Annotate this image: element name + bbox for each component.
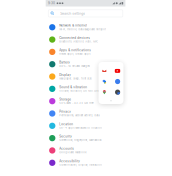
staticText: Sound & vibration — [59, 85, 87, 89]
button[interactable]: Security — [46, 132, 125, 144]
button[interactable]: Search settings — [48, 10, 123, 17]
staticText: Privacy — [59, 110, 71, 113]
staticText: 50% used - 62.23 GB free — [59, 102, 93, 105]
button[interactable]: Location — [46, 120, 125, 132]
button[interactable]: Storage — [46, 95, 125, 107]
staticText: Apps & notifications — [59, 48, 91, 52]
button[interactable]: Connected devices — [46, 33, 125, 46]
staticText: Connected devices — [59, 36, 90, 40]
staticText: Screen lock, fingerprint, Face unlock — [59, 139, 101, 142]
staticText: Wallpaper, sleep, font size — [59, 77, 91, 80]
button[interactable]: Network & internet — [46, 21, 125, 33]
staticText: Volume, vibration, Do Not Disturb — [59, 89, 103, 92]
staticText: On - 4 apps have access to location — [59, 126, 101, 129]
staticText: Wi-Fi, mobile, data usage and hotspot — [59, 28, 106, 31]
staticText: Accounts — [59, 147, 74, 150]
staticText: 88% - 16 hrs and charged — [59, 65, 90, 68]
button[interactable]: Privacy — [46, 107, 125, 120]
staticText: Search settings — [60, 11, 85, 15]
staticText: Accessibility — [59, 159, 80, 163]
button[interactable]: Accounts — [46, 144, 125, 157]
button[interactable]: Apps & notifications — [46, 46, 125, 58]
staticText: Storage — [59, 98, 71, 101]
staticText: Network & internet — [59, 24, 87, 27]
staticText: Permissions, account activity, data — [59, 114, 99, 117]
staticText: 9:30 — [48, 1, 55, 5]
button[interactable]: Battery — [46, 58, 125, 70]
button[interactable]: Accessibility — [46, 157, 125, 169]
staticText: Security — [59, 135, 72, 138]
button[interactable]: Sound & vibration — [46, 83, 125, 95]
staticText: Recent apps, default apps — [59, 52, 90, 55]
staticText: Display — [59, 73, 71, 77]
button[interactable]: Display — [46, 70, 125, 83]
staticText: Location — [59, 122, 73, 126]
staticText: Google and Facebook — [59, 151, 86, 154]
staticText: Screen readers, display, interaction — [59, 163, 101, 166]
staticText: Bluetooth, Android Auto, NFC — [59, 40, 98, 43]
staticText: Battery — [59, 61, 70, 64]
